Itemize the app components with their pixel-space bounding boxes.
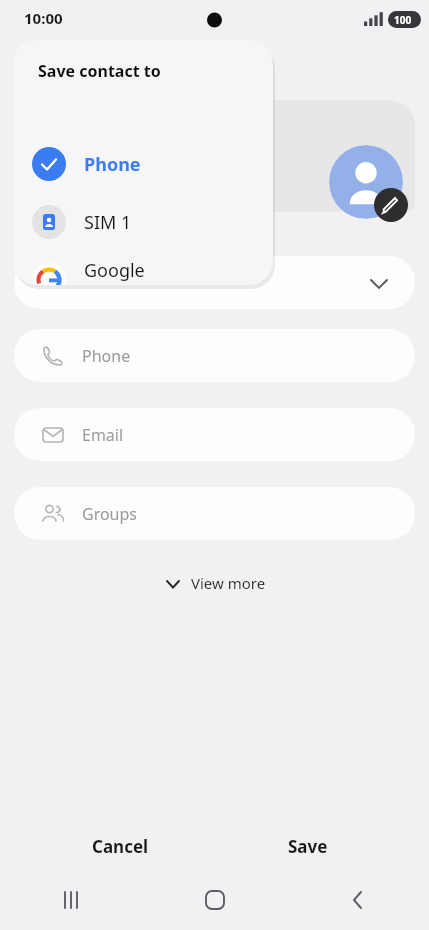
button[interactable]: SIM 1 xyxy=(13,196,273,248)
staticText: Google xyxy=(84,258,145,283)
staticText: Groups xyxy=(82,503,138,525)
button[interactable] xyxy=(14,256,415,309)
button[interactable]: Phone xyxy=(14,329,415,382)
button[interactable]: Cancel xyxy=(36,823,204,869)
button[interactable]: View more xyxy=(0,566,429,600)
button[interactable]: Back xyxy=(286,870,429,930)
button[interactable]: Save xyxy=(224,823,392,869)
button[interactable]: Email xyxy=(14,408,415,461)
staticText: Phone xyxy=(82,345,131,367)
staticText: Email xyxy=(82,424,124,446)
button[interactable]: Groups xyxy=(14,487,415,540)
staticText: Save xyxy=(288,835,328,858)
button[interactable]: Contact photo xyxy=(329,145,403,219)
button[interactable]: Google xyxy=(13,252,273,285)
staticText: Save contact to xyxy=(38,60,161,82)
staticText: Phone xyxy=(84,152,141,177)
staticText: View more xyxy=(191,573,266,593)
button[interactable]: Home xyxy=(143,870,286,930)
staticText: 10:00 xyxy=(24,8,63,28)
staticText: 100 xyxy=(394,13,412,27)
button[interactable]: Recent apps xyxy=(0,870,143,930)
staticText: SIM 1 xyxy=(84,210,132,235)
button[interactable]: Edit photo xyxy=(374,188,408,222)
button[interactable]: Phone xyxy=(13,138,273,190)
staticText: Cancel xyxy=(92,835,149,858)
